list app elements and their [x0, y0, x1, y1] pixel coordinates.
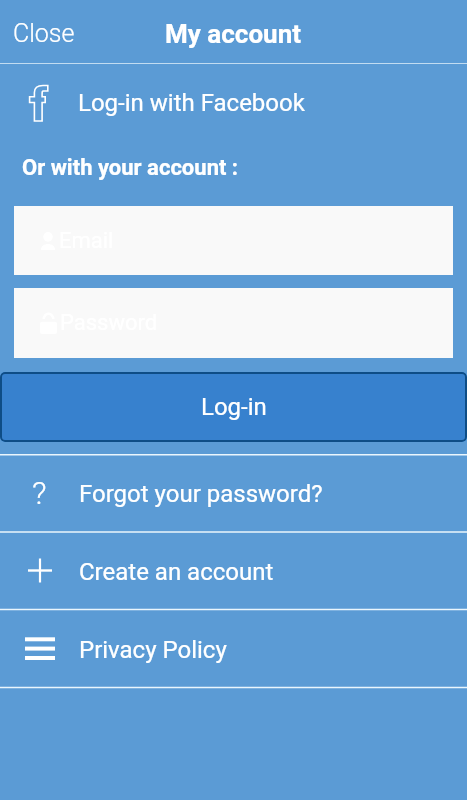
- staticText: Create an account: [79, 558, 274, 586]
- button[interactable]: Close: [0, 8, 88, 55]
- button[interactable]: Log-in with Facebook: [0, 65, 467, 139]
- staticText: My account: [165, 19, 302, 49]
- staticText: Or with your account :: [22, 155, 239, 181]
- staticText: Forgot your password?: [79, 480, 323, 508]
- staticText: Privacy Policy: [79, 636, 227, 664]
- button[interactable]: Create an account: [0, 531, 467, 609]
- other: Log-in with Facebook: [29, 84, 49, 121]
- button[interactable]: Log-in: [0, 372, 467, 442]
- other: Create an account: [28, 558, 52, 582]
- staticText: Log-in: [201, 393, 267, 421]
- staticText: Close: [13, 19, 75, 48]
- other: Privacy Policy: [25, 637, 55, 659]
- button[interactable]: Privacy Policy: [0, 609, 467, 687]
- staticText: ?: [32, 474, 47, 512]
- staticText: Log-in with Facebook: [78, 89, 305, 117]
- button[interactable]: ?: [0, 453, 467, 531]
